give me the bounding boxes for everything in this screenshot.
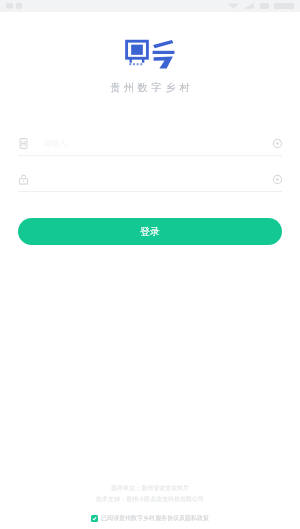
staticText: 指导单位：贵州省农业农村厅	[0, 484, 300, 492]
staticText: 贵 州 数 字 乡 村	[0, 80, 300, 94]
button[interactable]: Phone	[0, 131, 300, 167]
button[interactable]: Agree checkbox	[91, 514, 209, 522]
staticText: 技术支持：贵州小雨点农业科技有限公司	[0, 495, 300, 503]
button[interactable]: Clear	[273, 175, 282, 184]
staticText: 登录	[140, 225, 160, 238]
staticText: 已阅读贵州数字乡村服务协议及隐私政策	[101, 514, 209, 522]
button[interactable]: 登录	[18, 218, 282, 245]
button[interactable]: Password	[0, 167, 300, 203]
other: Password	[18, 174, 29, 185]
staticText: 请输入	[43, 138, 67, 148]
other: Phone	[18, 138, 29, 149]
button[interactable]: Clear	[273, 139, 282, 148]
other: Agree checkbox	[91, 515, 98, 522]
